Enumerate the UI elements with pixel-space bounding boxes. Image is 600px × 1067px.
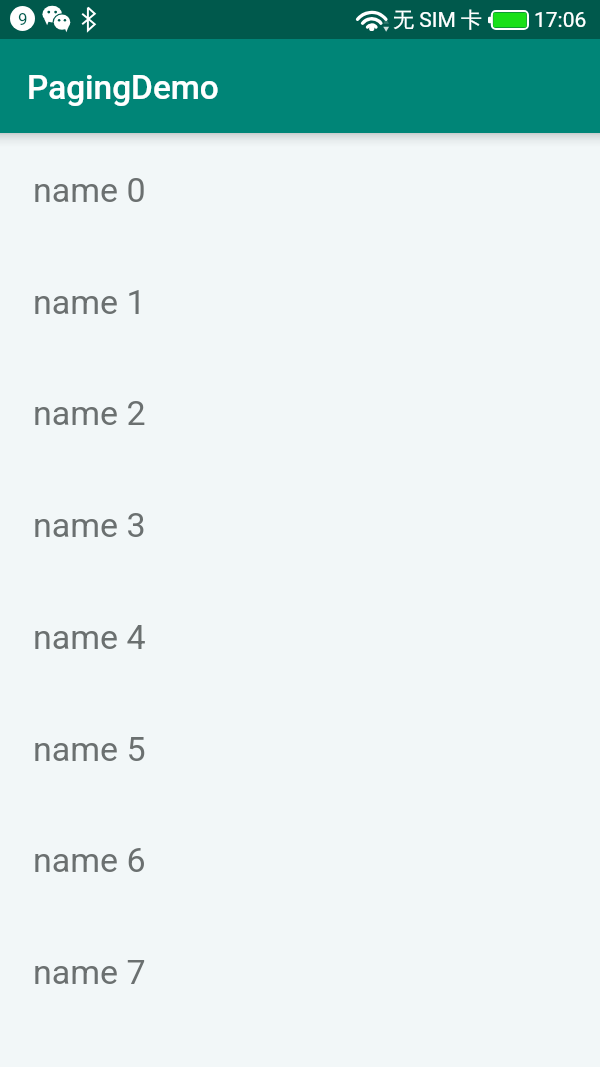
button[interactable]: name 2 bbox=[0, 356, 600, 468]
staticText: name 5 bbox=[33, 729, 146, 769]
button[interactable]: name 6 bbox=[0, 803, 600, 915]
button[interactable]: name 4 bbox=[0, 580, 600, 692]
staticText: name 6 bbox=[33, 840, 146, 880]
staticText: name 7 bbox=[33, 952, 146, 992]
other: Wi-Fi signal bbox=[359, 10, 387, 31]
staticText: name 4 bbox=[33, 617, 146, 657]
staticText: name 2 bbox=[33, 393, 146, 433]
button[interactable]: name 5 bbox=[0, 692, 600, 804]
staticText: 无 SIM 卡 bbox=[393, 7, 482, 33]
staticText: name 3 bbox=[33, 505, 146, 545]
button[interactable]: name 7 bbox=[0, 915, 600, 1027]
staticText: PagingDemo bbox=[27, 68, 219, 107]
button[interactable]: name 1 bbox=[0, 245, 600, 357]
staticText: 9 bbox=[18, 9, 28, 29]
staticText: 17:06 bbox=[534, 8, 587, 33]
other: WeChat notification bbox=[42, 6, 70, 31]
button[interactable]: name 0 bbox=[0, 133, 600, 245]
staticText: name 1 bbox=[33, 282, 146, 322]
staticText: name 0 bbox=[33, 170, 146, 210]
other: Battery full bbox=[488, 10, 529, 30]
other: Bluetooth on bbox=[81, 7, 96, 31]
button[interactable]: name 3 bbox=[0, 468, 600, 580]
